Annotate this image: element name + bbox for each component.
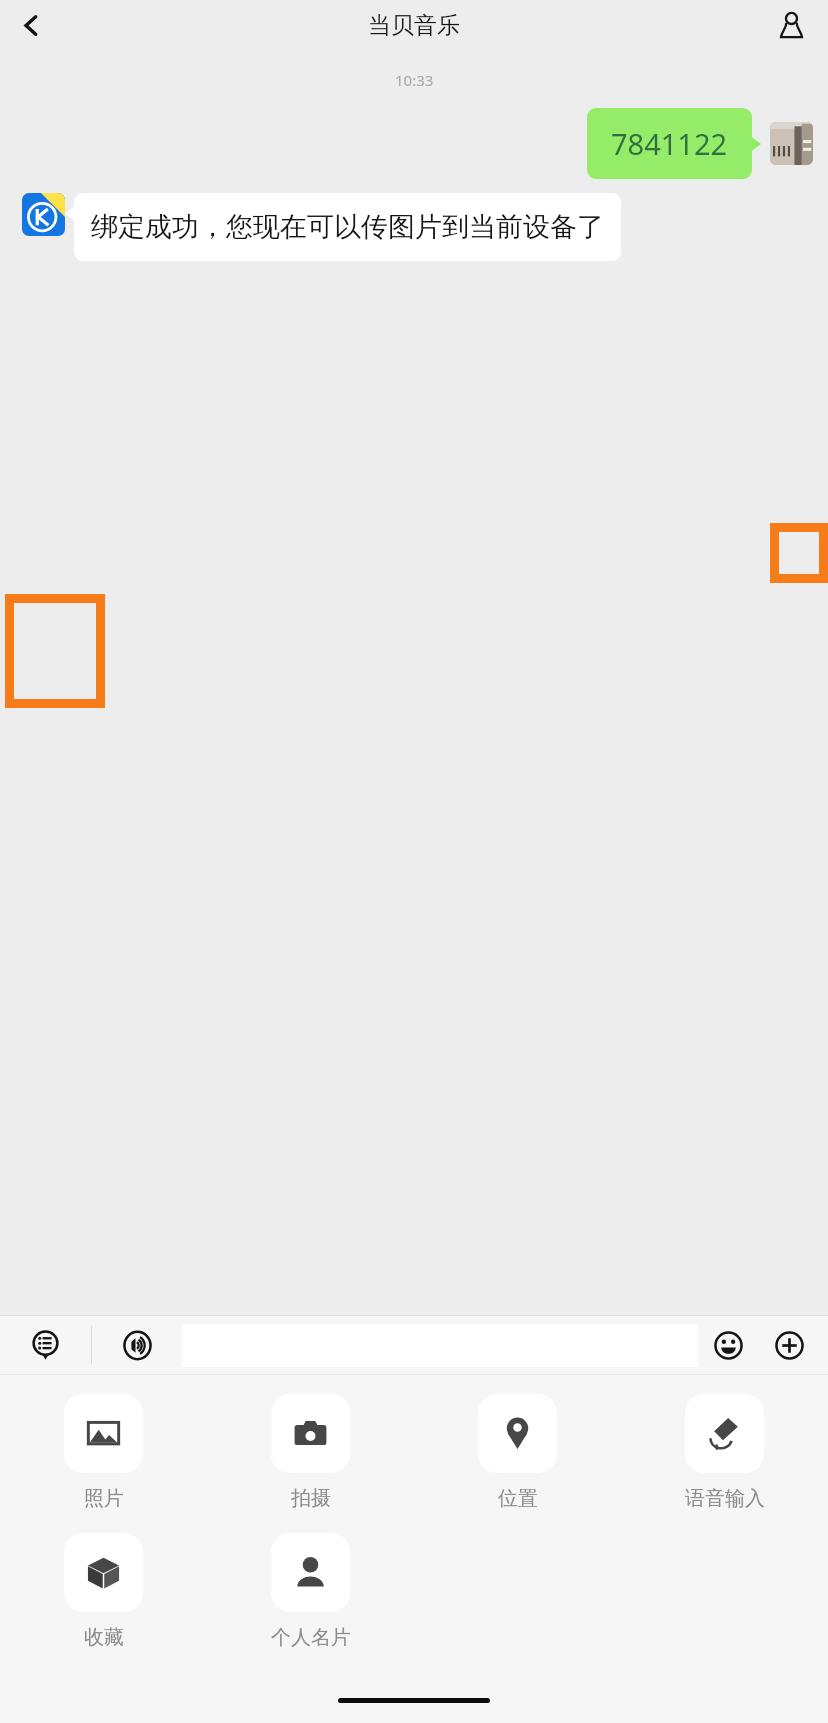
button[interactable]: More options — [758, 1316, 820, 1374]
button[interactable]: Voice message — [92, 1316, 182, 1374]
staticText: 绑定成功，您现在可以传图片到当前设备了 — [91, 210, 604, 244]
button[interactable]: 7841122 — [587, 108, 752, 179]
button[interactable]: Back — [4, 0, 58, 50]
button[interactable]: 绑定成功，您现在可以传图片到当前设备了 — [74, 193, 621, 261]
button[interactable]: 位置 — [414, 1391, 621, 1514]
staticText: 照片 — [84, 1486, 124, 1511]
staticText: 收藏 — [84, 1625, 124, 1650]
staticText: 拍摄 — [291, 1486, 331, 1511]
button[interactable]: App avatar — [22, 193, 65, 236]
staticText: 位置 — [498, 1486, 538, 1511]
button[interactable]: 收藏 — [0, 1530, 207, 1653]
button[interactable]: My avatar — [770, 122, 813, 165]
button[interactable]: Chat menu — [0, 1316, 91, 1374]
button[interactable]: Emoji — [698, 1316, 758, 1374]
staticText: 10:33 — [395, 70, 434, 90]
staticText: 7841122 — [611, 124, 728, 163]
button[interactable]: 拍摄 — [207, 1391, 414, 1514]
staticText: 语音输入 — [685, 1486, 765, 1511]
staticText: 个人名片 — [271, 1625, 351, 1650]
button[interactable]: 个人名片 — [207, 1530, 414, 1653]
staticText: 当贝音乐 — [368, 11, 460, 40]
button[interactable]: 语音输入 — [621, 1391, 828, 1514]
button[interactable]: Contact profile — [764, 0, 818, 50]
button[interactable]: 照片 — [0, 1391, 207, 1514]
